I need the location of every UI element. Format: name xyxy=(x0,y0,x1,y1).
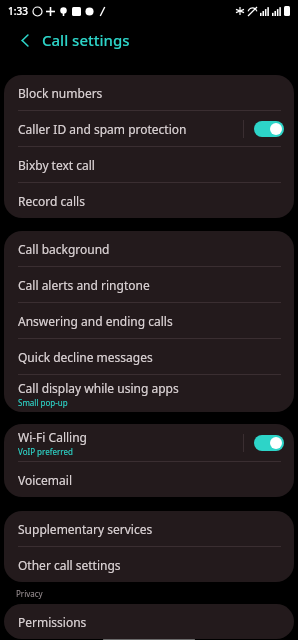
button[interactable]: Toggle xyxy=(254,121,284,137)
button[interactable]: Answering and ending calls xyxy=(4,303,294,338)
button[interactable]: Quick decline messages xyxy=(4,339,294,374)
button[interactable]: Voicemail xyxy=(4,462,294,497)
staticText: Call settings xyxy=(42,30,130,50)
button[interactable]: Call alerts and ringtone xyxy=(4,267,294,302)
staticText: 1:33 xyxy=(8,4,28,18)
staticText: Call background xyxy=(18,241,110,257)
staticText: Answering and ending calls xyxy=(18,313,173,329)
staticText: Block numbers xyxy=(18,85,103,101)
button[interactable]: Bixby text call xyxy=(4,147,294,182)
staticText: VoIP preferred xyxy=(18,446,73,457)
staticText: Bixby text call xyxy=(18,157,95,173)
staticText: Quick decline messages xyxy=(18,349,153,365)
staticText: Privacy xyxy=(16,588,43,599)
staticText: Supplementary services xyxy=(18,521,153,537)
staticText: Small pop-up xyxy=(18,397,68,408)
button[interactable]: Call display while using apps xyxy=(4,375,294,412)
button[interactable]: Supplementary services xyxy=(4,511,294,546)
staticText: Other call settings xyxy=(18,557,121,573)
button[interactable]: Record calls xyxy=(4,183,294,218)
button[interactable]: Toggle xyxy=(254,435,284,451)
button[interactable]: Other call settings xyxy=(4,547,294,582)
button[interactable]: Caller ID and spam protection xyxy=(4,111,294,146)
button[interactable]: Permissions xyxy=(4,604,294,639)
staticText: Call display while using apps xyxy=(18,380,179,396)
staticText: Record calls xyxy=(18,193,85,209)
staticText: Permissions xyxy=(18,614,87,630)
button[interactable]: Block numbers xyxy=(4,75,294,110)
staticText: Caller ID and spam protection xyxy=(18,121,187,137)
button[interactable]: Call background xyxy=(4,231,294,266)
staticText: Wi-Fi Calling xyxy=(18,429,87,445)
staticText: Call alerts and ringtone xyxy=(18,277,150,293)
button[interactable]: Wi-Fi Calling xyxy=(4,424,294,461)
button[interactable]: Back xyxy=(14,29,36,51)
staticText: Voicemail xyxy=(18,472,72,488)
